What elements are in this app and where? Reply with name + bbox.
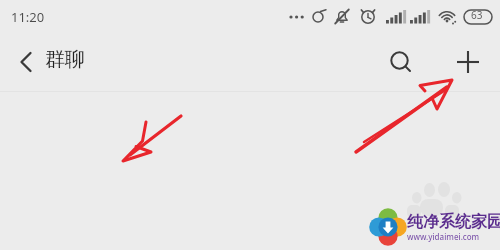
button[interactable]: Search [380, 41, 422, 83]
button[interactable]: Add [447, 41, 489, 83]
staticText: 11:20 [11, 8, 45, 26]
staticText: 纯净系统家园 [407, 212, 500, 232]
staticText: 63 [471, 8, 483, 22]
button[interactable]: Back [4, 40, 48, 84]
staticText: www.yidaimei.com [407, 231, 480, 242]
staticText: 群聊 [45, 47, 85, 72]
